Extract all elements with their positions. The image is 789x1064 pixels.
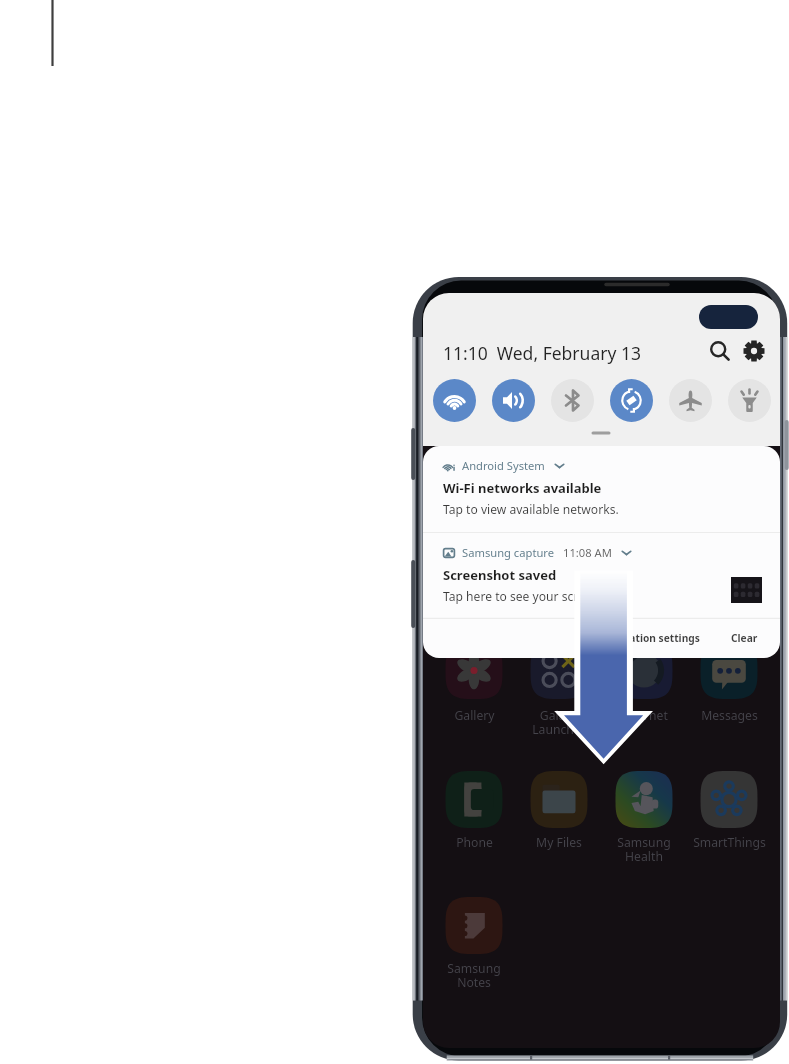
staticText: 11:10 Wed, February 13	[443, 341, 641, 365]
button[interactable]: My Files	[514, 834, 604, 851]
staticText: Galaxy Launcher	[532, 707, 586, 738]
staticText: My Files	[536, 834, 582, 851]
staticText: 11:08 AM	[563, 545, 612, 560]
button[interactable]: Auto rotate	[610, 379, 653, 422]
staticText: Clear	[731, 631, 758, 645]
staticText: Tap here to see your screenshot.	[443, 588, 628, 604]
button[interactable]: SmartThings	[684, 834, 774, 851]
button[interactable]: Gallery	[429, 707, 519, 724]
button[interactable]: Galaxy Launcher	[514, 707, 604, 738]
button[interactable]: Clear	[731, 631, 758, 645]
staticText: Samsung capture	[462, 545, 555, 560]
staticText: Samsung Health	[617, 834, 671, 865]
staticText: Samsung Notes	[447, 960, 501, 991]
staticText: SmartThings	[693, 834, 766, 851]
button[interactable]: Messages	[684, 707, 774, 724]
button[interactable]: Sound	[492, 379, 535, 422]
button[interactable]: Android System	[423, 446, 780, 532]
button[interactable]: Wi-Fi	[433, 379, 476, 422]
button[interactable]: Phone	[429, 834, 519, 851]
staticText: Wi-Fi networks available	[443, 479, 602, 497]
button[interactable]: Airplane mode	[669, 379, 712, 422]
staticText: Messages	[701, 707, 758, 724]
staticText: Android System	[462, 458, 545, 473]
staticText: Notification settings	[595, 631, 700, 645]
staticText: Tap to view available networks.	[443, 501, 619, 517]
staticText: Gallery	[454, 707, 495, 724]
button[interactable]: Search	[706, 337, 734, 365]
button[interactable]: Internet	[599, 707, 689, 724]
button[interactable]: Flashlight	[728, 379, 771, 422]
button[interactable]: Notification settings	[595, 631, 700, 645]
button[interactable]: Samsung Notes	[429, 960, 519, 991]
button[interactable]: Samsung Health	[599, 834, 689, 865]
button[interactable]: 11:10 Wed, February 13	[443, 341, 641, 365]
staticText: Screenshot saved	[443, 566, 557, 584]
button[interactable]: Samsung capture	[423, 533, 780, 619]
staticText: Phone	[456, 834, 493, 851]
staticText: Internet	[621, 707, 668, 724]
button[interactable]: Settings	[740, 337, 768, 365]
button[interactable]: Bluetooth	[551, 379, 594, 422]
